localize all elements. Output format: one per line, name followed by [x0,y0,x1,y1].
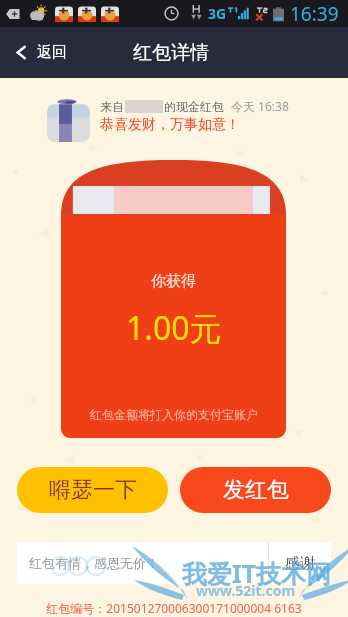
button[interactable]: 红包有情，感恩无价！ [17,542,268,584]
staticText: 你获得 [151,272,196,291]
staticText: 16:39 [290,1,339,27]
staticText: 1.00元 [126,306,222,350]
staticText: 红包详情 [133,41,209,65]
button[interactable]: 感谢 [269,542,331,584]
staticText: 恭喜发财，万事如意！ [100,116,240,134]
staticText: 今天 16:38 [231,98,289,114]
staticText: 的现金红包 [164,99,224,114]
staticText: 感谢 [285,554,315,573]
staticText: 嘚瑟一下 [49,476,137,504]
staticText: www.52it.com [196,581,296,600]
staticText: 返回 [37,43,67,62]
button[interactable]: 发红包 [180,467,331,513]
button[interactable]: 返回 [0,27,85,78]
staticText: 红包有情，感恩无价！ [29,555,159,571]
staticText: 来自 [100,99,124,114]
staticText: 发红包 [223,476,289,504]
staticText: 红包金额将打入你的支付宝账户 [90,407,258,422]
staticText: 红包编号：201501270006300171000004 6163 [46,600,302,616]
staticText: 3G [208,4,227,23]
staticText: 我爱IT技术网 [182,556,332,590]
button[interactable]: 嘚瑟一下 [17,467,168,513]
